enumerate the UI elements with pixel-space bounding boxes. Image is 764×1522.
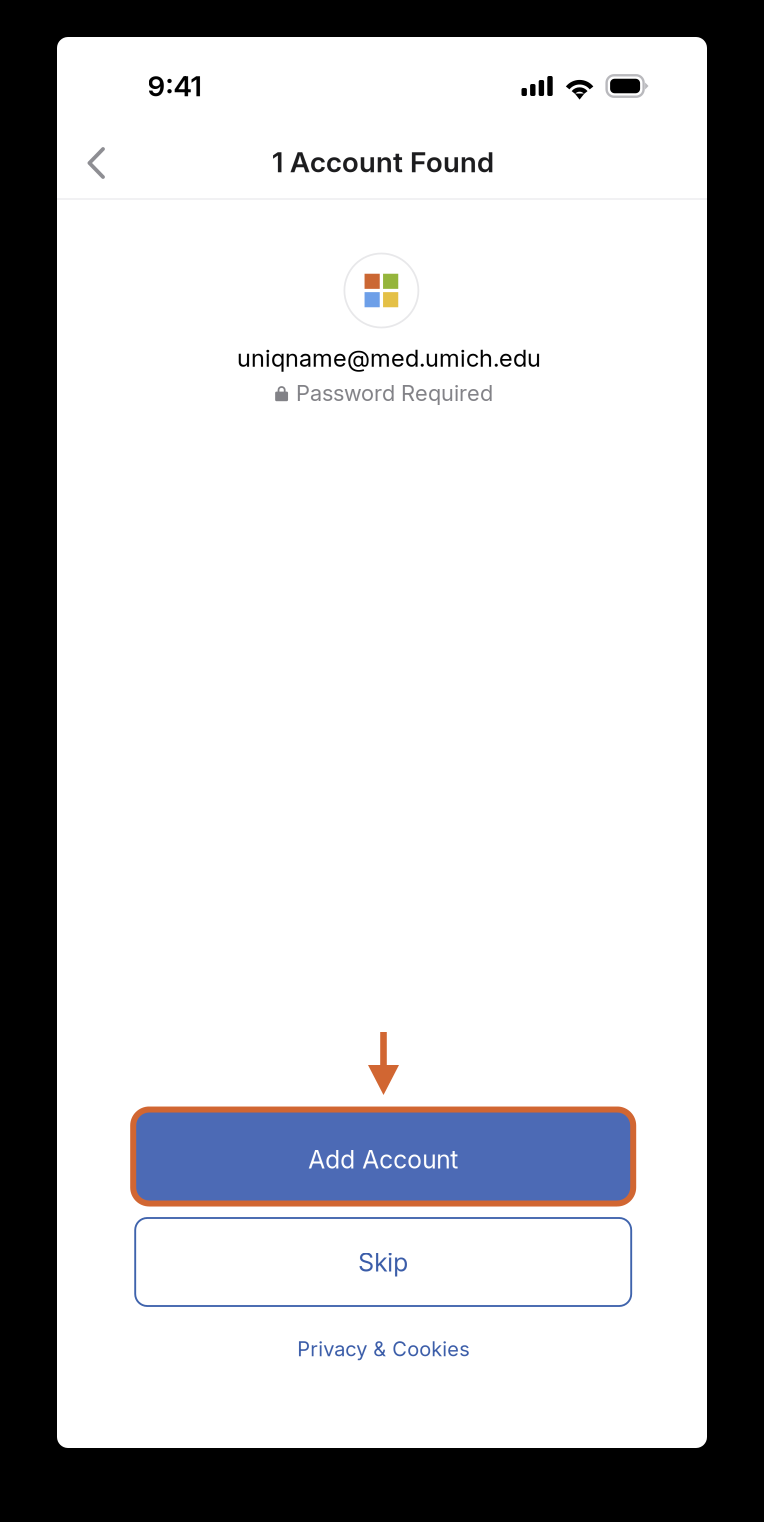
staticText: 1 Account Found (272, 145, 494, 179)
staticText: Password Required (296, 380, 493, 406)
button[interactable]: Skip (135, 1218, 631, 1306)
button[interactable]: Privacy & Cookies (253, 1329, 513, 1369)
staticText: Privacy & Cookies (297, 1337, 469, 1361)
staticText: Add Account (308, 1144, 458, 1174)
staticText: uniqname@med.umich.edu (237, 344, 541, 372)
staticText: 9:41 (147, 69, 201, 103)
button[interactable]: Back (61, 130, 131, 196)
staticText: Skip (358, 1247, 408, 1277)
button[interactable]: Add Account (130, 1106, 636, 1206)
